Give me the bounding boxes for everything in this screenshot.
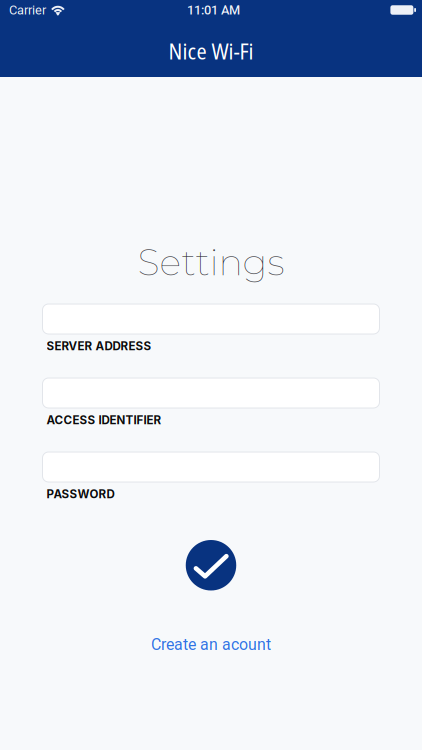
staticText: ACCESS IDENTIFIER (46, 413, 161, 427)
button[interactable]: PASSWORD (42, 452, 379, 482)
staticText: Settings (137, 240, 284, 284)
button[interactable]: ACCESS IDENTIFIER (42, 378, 379, 408)
staticText: Create an acount (151, 635, 271, 654)
staticText: PASSWORD (46, 487, 114, 501)
button[interactable]: SERVER ADDRESS (42, 304, 379, 334)
button[interactable]: Confirm settings (186, 540, 236, 590)
button[interactable]: Create an acount (136, 633, 286, 655)
staticText: SERVER ADDRESS (46, 339, 151, 353)
staticText: 11:01 AM (187, 2, 240, 17)
staticText: Nice Wi-Fi (168, 36, 253, 66)
staticText: Carrier (9, 2, 46, 17)
